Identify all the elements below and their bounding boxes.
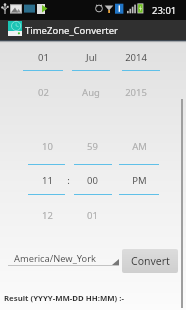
button[interactable]	[119, 136, 159, 222]
staticText: 12	[42, 209, 53, 222]
button[interactable]	[122, 42, 160, 100]
staticText: Aug	[82, 86, 100, 99]
staticText: 02	[38, 86, 49, 99]
staticText: 01	[38, 51, 49, 64]
button[interactable]: America/New_York	[8, 248, 120, 266]
staticText: :	[67, 174, 70, 187]
staticText: America/New_York	[14, 252, 97, 265]
staticText: 00	[87, 174, 98, 187]
staticText: 2015	[125, 86, 147, 99]
staticText: 01	[87, 209, 98, 222]
staticText: 2014	[125, 51, 147, 64]
staticText: AM	[132, 140, 147, 153]
staticText: 10	[42, 140, 53, 153]
staticText: 11	[42, 174, 53, 187]
staticText: PM	[132, 174, 147, 187]
button[interactable]: Convert	[122, 249, 178, 273]
staticText: TimeZone_Converter	[25, 24, 119, 37]
button[interactable]	[72, 42, 110, 100]
staticText: 59	[87, 140, 98, 153]
button[interactable]	[74, 136, 112, 222]
button[interactable]	[28, 136, 65, 222]
staticText: Jul	[86, 51, 97, 64]
staticText: 23:01	[152, 4, 177, 17]
button[interactable]	[23, 42, 63, 100]
staticText: Convert	[131, 254, 170, 268]
staticText: Result (YYYY-MM-DD HH:MM) :-	[4, 293, 124, 304]
